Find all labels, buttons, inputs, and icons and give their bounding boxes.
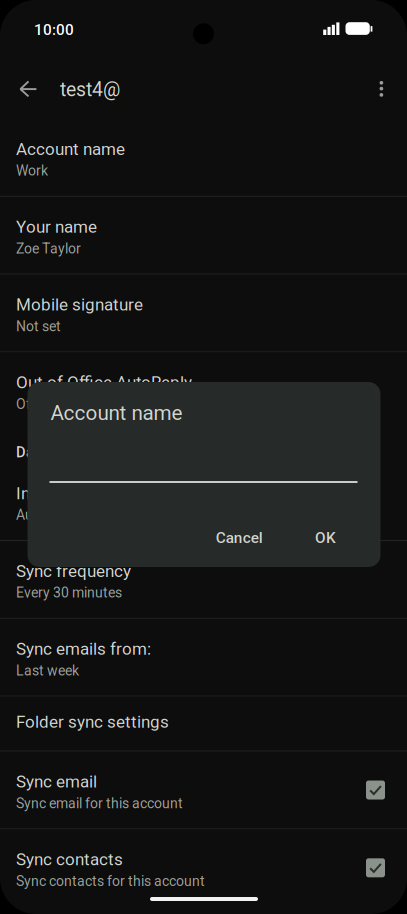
button[interactable]: Inbox check frequency — [0, 463, 407, 540]
button[interactable]: Mobile signature — [0, 275, 407, 351]
staticText: Zoe Taylor — [16, 240, 81, 257]
button[interactable]: More options — [359, 67, 403, 115]
button[interactable]: Sync emails from: — [0, 619, 407, 696]
staticText: Mobile signature — [16, 295, 143, 315]
button[interactable]: OK — [298, 516, 354, 554]
staticText: Account name — [16, 139, 125, 159]
staticText: Not set — [16, 318, 61, 335]
staticText: Folder sync settings — [16, 712, 169, 732]
staticText: Sync frequency — [16, 561, 131, 581]
staticText: OK — [315, 529, 336, 547]
staticText: 10:00 — [34, 21, 74, 39]
staticText: Inbox check frequency — [16, 483, 186, 503]
staticText: Off — [16, 396, 36, 412]
staticText: Work — [16, 163, 48, 179]
button[interactable]: Account name — [0, 119, 407, 196]
button[interactable]: Folder sync settings — [0, 697, 407, 751]
staticText: Sync contacts — [16, 850, 123, 869]
button[interactable]: Cancel — [199, 516, 279, 554]
staticText: Sync contacts for this account — [16, 873, 205, 889]
staticText: Every 30 minutes — [16, 585, 122, 601]
staticText: Automatic — [16, 507, 80, 523]
staticText: Cancel — [216, 529, 263, 547]
staticText: Last week — [16, 662, 79, 679]
staticText: test4@ — [60, 78, 120, 101]
staticText: Your name — [16, 217, 97, 237]
staticText: Out of Office AutoReply — [16, 373, 192, 392]
staticText: Account name — [50, 401, 182, 425]
button[interactable]: Sync frequency — [0, 541, 407, 618]
button[interactable]: Sync email — [0, 752, 407, 828]
staticText: Sync email — [16, 772, 97, 792]
button[interactable]: Out of Office AutoReply — [0, 352, 407, 429]
button[interactable]: Sync contacts — [0, 829, 407, 906]
staticText: Sync emails from: — [16, 639, 151, 659]
staticText: Sync email for this account — [16, 795, 183, 812]
button[interactable]: Your name — [0, 197, 407, 274]
button[interactable]: Back — [4, 65, 52, 113]
staticText: Data usage — [16, 444, 91, 461]
